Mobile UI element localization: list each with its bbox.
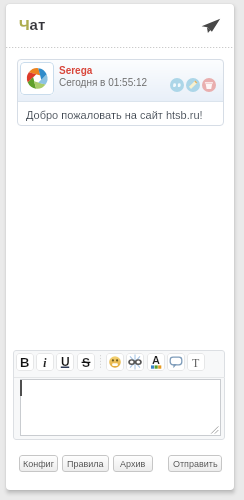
- button[interactable]: Правила: [62, 455, 109, 472]
- button[interactable]: Удалить: [202, 78, 216, 92]
- staticText: A: [152, 354, 160, 366]
- button[interactable]: Шрифт: [187, 353, 205, 371]
- button[interactable]: Цитата: [167, 353, 185, 371]
- button[interactable]: Редактировать: [186, 78, 200, 92]
- button[interactable]: Отправить сообщение: [196, 12, 226, 40]
- staticText: Правила: [67, 459, 104, 469]
- button[interactable]: [17, 59, 224, 126]
- button[interactable]: Зачёркнутый: [77, 353, 95, 371]
- staticText: T: [192, 356, 200, 369]
- button[interactable]: Чат: [10, 12, 72, 38]
- staticText: B: [20, 355, 30, 370]
- staticText: Serega: [59, 65, 93, 76]
- button[interactable]: Курсив: [36, 353, 54, 371]
- staticText: Чат: [19, 16, 46, 33]
- button[interactable]: Подчёркнутый: [56, 353, 74, 371]
- staticText: Конфиг: [23, 459, 54, 469]
- staticText: Архив: [120, 459, 146, 469]
- button[interactable]: Смайлы: [106, 353, 124, 371]
- staticText: Отправить: [173, 459, 218, 469]
- staticText: Добро пожаловать на сайт htsb.ru!: [26, 109, 203, 121]
- staticText: Сегодня в 01:55:12: [59, 77, 148, 88]
- button[interactable]: Отправить: [168, 455, 222, 472]
- button[interactable]: Поле ввода сообщения: [20, 379, 221, 436]
- button[interactable]: Конфиг: [19, 455, 58, 472]
- staticText: S: [82, 356, 91, 369]
- button[interactable]: Архив: [113, 455, 153, 472]
- staticText: U: [61, 355, 70, 368]
- button[interactable]: Цитировать: [170, 78, 184, 92]
- button[interactable]: Жирный: [16, 353, 34, 371]
- staticText: i: [43, 355, 47, 369]
- button[interactable]: Цвет: [147, 353, 165, 371]
- button[interactable]: Ссылка: [126, 353, 144, 371]
